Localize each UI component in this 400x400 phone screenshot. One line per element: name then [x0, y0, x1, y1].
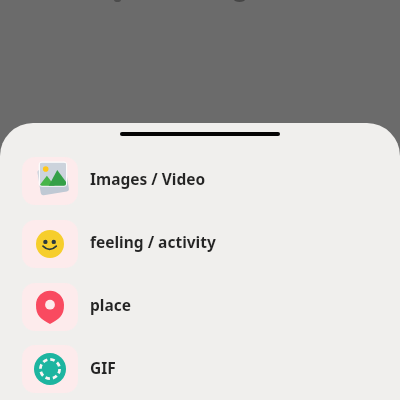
staticText: feeling / activity [90, 231, 216, 252]
button[interactable]: place [0, 275, 400, 338]
staticText: GIF [90, 357, 116, 378]
button[interactable]: Images / Video [0, 149, 400, 212]
button[interactable]: GIF [0, 338, 400, 400]
staticText: place [90, 294, 131, 315]
staticText: Images / Video [90, 168, 206, 189]
button[interactable]: feeling / activity [0, 212, 400, 275]
button[interactable]: Drag handle [0, 123, 400, 144]
